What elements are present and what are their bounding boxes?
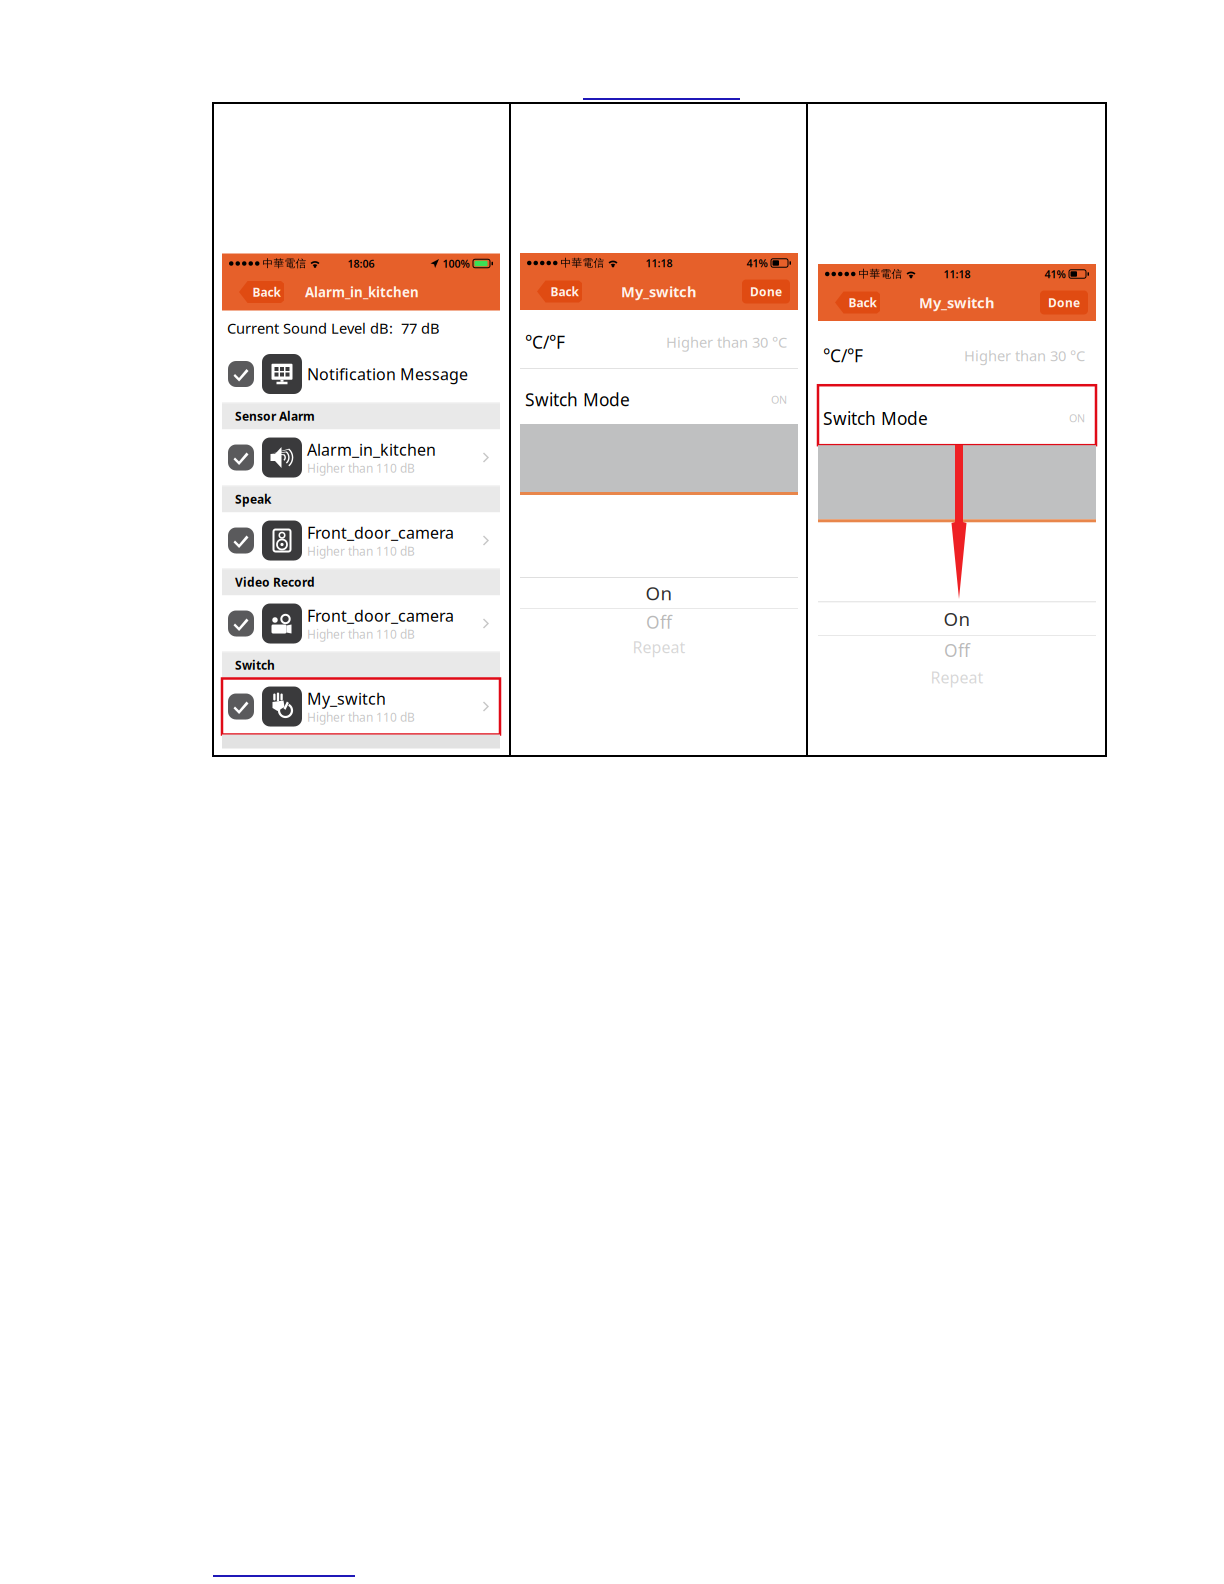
button[interactable]: Back bbox=[239, 279, 284, 304]
staticText: Back bbox=[252, 284, 280, 300]
button[interactable]: On bbox=[943, 602, 970, 635]
staticText: Speak bbox=[235, 491, 271, 507]
staticText: Switch bbox=[235, 657, 275, 673]
staticText: My_switch bbox=[621, 282, 697, 301]
staticText: Off bbox=[646, 610, 672, 633]
button[interactable]: Repeat bbox=[632, 635, 685, 659]
button[interactable]: °C/°F bbox=[818, 321, 1096, 384]
staticText: ON bbox=[771, 392, 787, 407]
button[interactable]: Repeat bbox=[930, 664, 983, 690]
button[interactable]: Done bbox=[742, 279, 790, 303]
staticText: Back bbox=[848, 294, 876, 310]
button[interactable]: Front_door_camera bbox=[222, 512, 500, 568]
staticText: Higher than 110 dB bbox=[307, 626, 415, 642]
staticText: 41% bbox=[1044, 267, 1065, 281]
staticText: Higher than 110 dB bbox=[307, 543, 415, 559]
staticText: Higher than 30 °C bbox=[666, 332, 787, 352]
staticText: 中華電信 bbox=[858, 267, 902, 280]
staticText: Done bbox=[750, 283, 782, 299]
staticText: 11:18 bbox=[943, 267, 970, 281]
button[interactable]: Alarm_in_kitchen bbox=[222, 429, 500, 485]
staticText: On bbox=[645, 581, 672, 605]
staticText: My_switch bbox=[307, 688, 386, 709]
button[interactable]: Done bbox=[1040, 290, 1088, 314]
staticText: Front_door_camera bbox=[307, 522, 454, 543]
staticText: Repeat bbox=[930, 667, 983, 688]
staticText: 100% bbox=[442, 256, 469, 271]
staticText: Off bbox=[944, 639, 970, 662]
button[interactable]: Back bbox=[835, 290, 880, 315]
staticText: °C/°F bbox=[525, 330, 565, 353]
button[interactable]: Back bbox=[537, 279, 582, 304]
staticText: My_switch bbox=[919, 293, 995, 312]
button[interactable]: Front_door_camera bbox=[222, 595, 500, 651]
staticText: 41% bbox=[746, 256, 767, 270]
staticText: Video Record bbox=[235, 574, 315, 590]
staticText: Front_door_camera bbox=[307, 605, 454, 626]
staticText: Notification Message bbox=[307, 363, 468, 385]
staticText: Alarm_in_kitchen bbox=[307, 439, 436, 460]
staticText: Higher than 30 °C bbox=[964, 346, 1085, 365]
staticText: 18:06 bbox=[347, 256, 374, 271]
staticText: Alarm_in_kitchen bbox=[305, 283, 419, 301]
button[interactable]: Switch Mode bbox=[818, 385, 1096, 445]
staticText: Switch Mode bbox=[823, 407, 928, 430]
staticText: Back bbox=[550, 283, 578, 299]
button[interactable]: Switch Mode bbox=[520, 369, 798, 424]
button[interactable]: °C/°F bbox=[520, 310, 798, 368]
button[interactable]: Notification Message bbox=[222, 345, 500, 402]
staticText: 中華電信 bbox=[560, 256, 604, 269]
button[interactable]: Off bbox=[646, 609, 672, 635]
staticText: Done bbox=[1048, 294, 1080, 310]
staticText: On bbox=[943, 606, 970, 631]
staticText: Higher than 110 dB bbox=[307, 460, 415, 476]
button[interactable]: On bbox=[645, 578, 672, 608]
staticText: Higher than 110 dB bbox=[307, 709, 415, 725]
staticText: Repeat bbox=[632, 636, 685, 658]
button[interactable]: My_switch bbox=[222, 678, 500, 734]
staticText: Sensor Alarm bbox=[235, 408, 315, 424]
staticText: ON bbox=[1069, 411, 1085, 425]
staticText: Current Sound Level dB: 77 dB bbox=[227, 318, 440, 338]
staticText: 11:18 bbox=[645, 256, 672, 270]
staticText: 中華電信 bbox=[262, 257, 306, 270]
button[interactable]: Off bbox=[944, 636, 970, 664]
staticText: °C/°F bbox=[823, 344, 863, 367]
staticText: Switch Mode bbox=[525, 388, 630, 411]
